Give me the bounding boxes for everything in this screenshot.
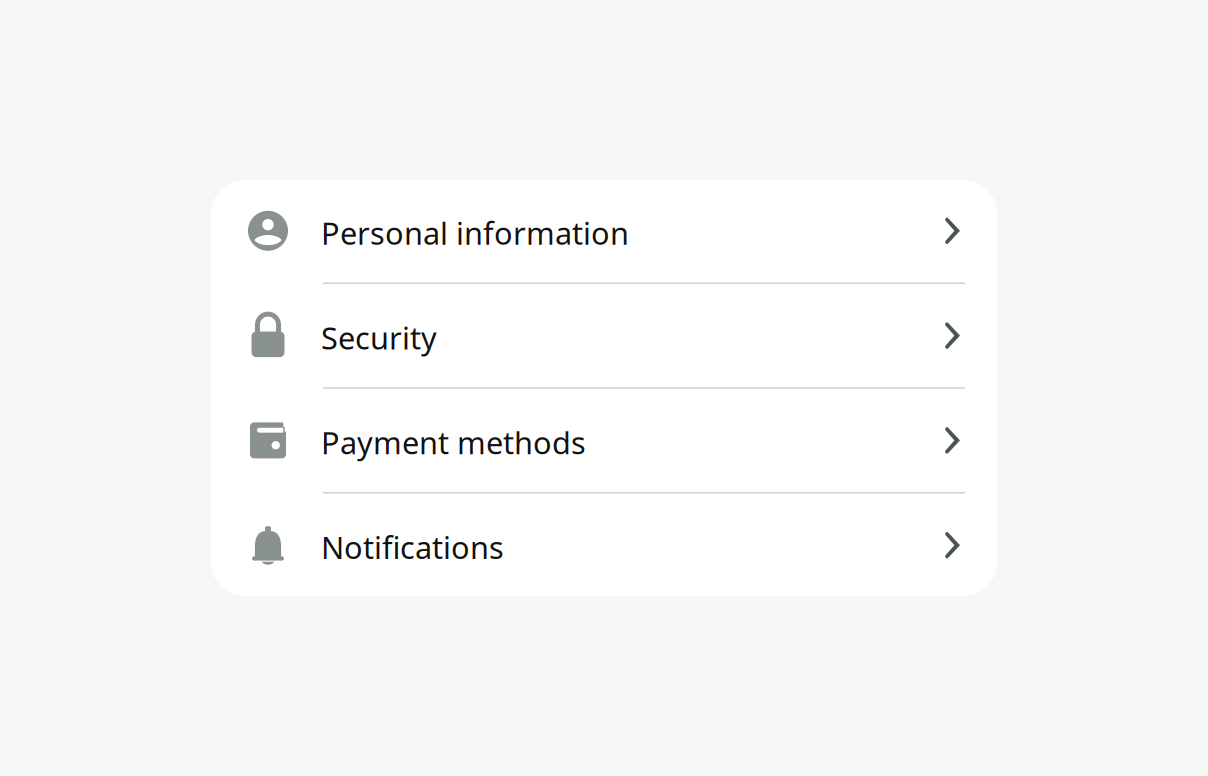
staticText: Payment methods	[321, 422, 586, 463]
staticText: Security	[321, 317, 437, 358]
button[interactable]: Notifications	[211, 493, 997, 597]
button[interactable]: Security	[211, 284, 997, 387]
staticText: Notifications	[321, 527, 504, 567]
button[interactable]: Personal information	[211, 179, 997, 282]
button[interactable]: Payment methods	[211, 389, 997, 492]
staticText: Personal information	[321, 212, 629, 253]
